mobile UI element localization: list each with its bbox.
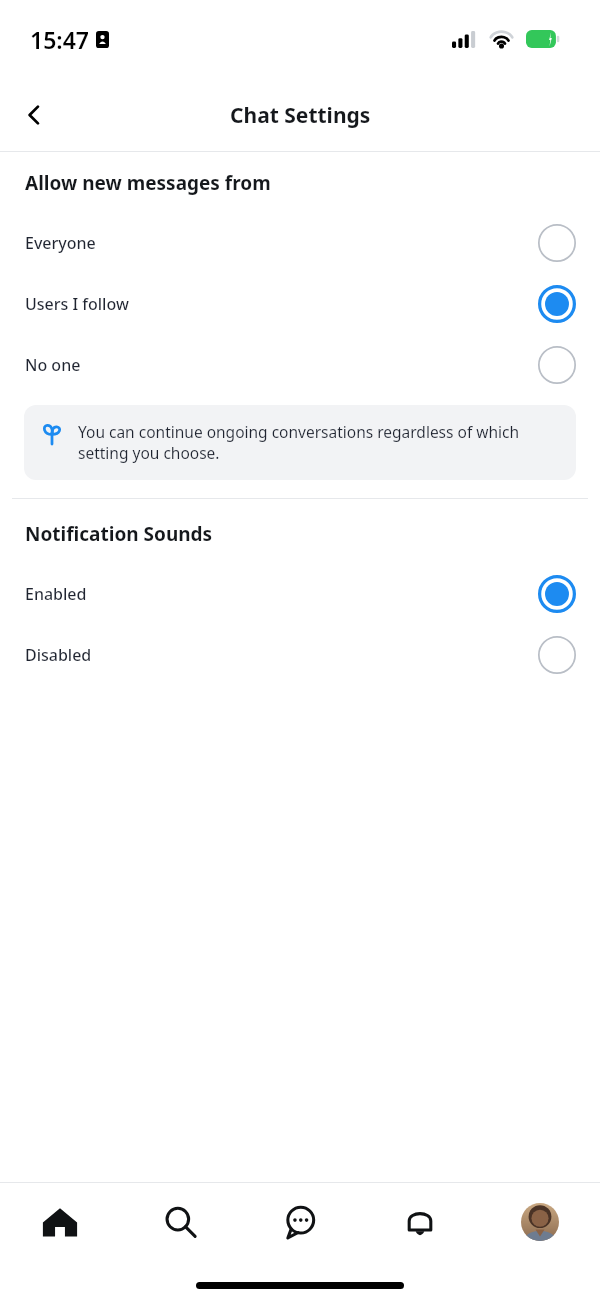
button[interactable]: Everyone — [0, 212, 600, 273]
button[interactable]: Profile — [480, 1183, 600, 1261]
staticText: Enabled — [25, 583, 87, 605]
button[interactable]: Enabled — [0, 563, 600, 624]
staticText: Allow new messages from — [25, 170, 271, 196]
staticText: Notification Sounds — [25, 521, 213, 547]
staticText: 15:47 — [30, 24, 89, 55]
button[interactable]: Search — [120, 1183, 240, 1261]
button[interactable]: Back — [6, 87, 62, 143]
staticText: Everyone — [25, 232, 96, 254]
staticText: Chat Settings — [230, 101, 371, 130]
button[interactable]: No one — [0, 334, 600, 395]
button[interactable]: Disabled — [0, 624, 600, 685]
button[interactable]: Messages — [240, 1183, 360, 1261]
button[interactable]: Users I follow — [0, 273, 600, 334]
staticText: Disabled — [25, 644, 92, 666]
button[interactable]: Home — [0, 1183, 120, 1261]
staticText: No one — [25, 354, 81, 376]
button[interactable]: Notifications — [360, 1183, 480, 1261]
staticText: Users I follow — [25, 293, 129, 315]
staticText: You can continue ongoing conversations r… — [78, 421, 560, 464]
